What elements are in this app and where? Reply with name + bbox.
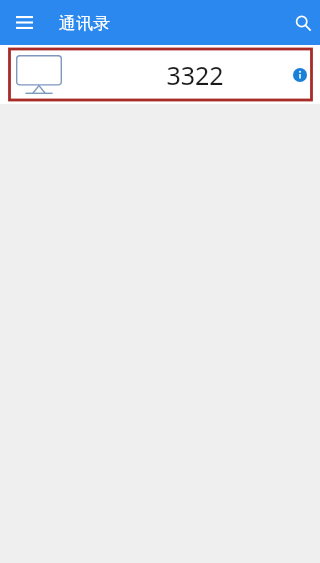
button[interactable]: Search xyxy=(278,0,320,45)
button[interactable]: Device information xyxy=(280,45,318,104)
button[interactable]: 3322 xyxy=(0,45,320,104)
button[interactable]: Open navigation menu xyxy=(0,0,48,45)
staticText: 3322 xyxy=(166,58,224,92)
staticText: 通讯录 xyxy=(59,13,110,34)
